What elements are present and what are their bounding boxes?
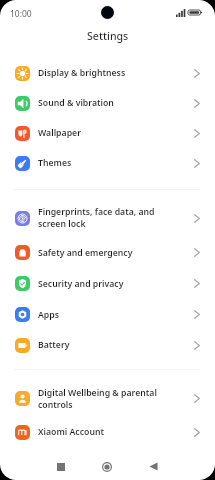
button[interactable]: Digital Wellbeing & parental controls — [0, 380, 215, 417]
button[interactable]: Recent apps — [46, 456, 76, 477]
button[interactable]: Xiaomi Account — [0, 417, 215, 447]
button[interactable]: Safety and emergency — [0, 237, 215, 268]
staticText: Security and privacy — [38, 278, 124, 290]
staticText: Display & brightness — [38, 67, 126, 79]
staticText: Battery — [38, 339, 70, 351]
button[interactable]: Apps — [0, 299, 215, 330]
button[interactable]: Security and privacy — [0, 268, 215, 299]
button[interactable]: Back — [138, 456, 168, 477]
staticText: Settings — [87, 29, 129, 43]
button[interactable]: Sound & vibration — [0, 88, 215, 118]
staticText: Digital Wellbeing & parental controls — [38, 387, 170, 411]
button[interactable]: Wallpaper — [0, 118, 215, 148]
staticText: 10:00 — [10, 8, 32, 20]
staticText: Safety and emergency — [38, 247, 133, 259]
staticText: Apps — [38, 309, 59, 321]
staticText: Sound & vibration — [38, 97, 114, 109]
staticText: Fingerprints, face data, and screen lock — [38, 206, 170, 230]
button[interactable]: Display & brightness — [0, 58, 215, 88]
staticText: Wallpaper — [38, 127, 81, 139]
button[interactable]: Home — [92, 456, 122, 477]
button[interactable]: Themes — [0, 148, 215, 178]
button[interactable]: Fingerprints, face data, and screen lock — [0, 199, 215, 237]
staticText: Themes — [38, 157, 72, 169]
button[interactable]: Battery — [0, 330, 215, 360]
staticText: Xiaomi Account — [38, 426, 105, 438]
